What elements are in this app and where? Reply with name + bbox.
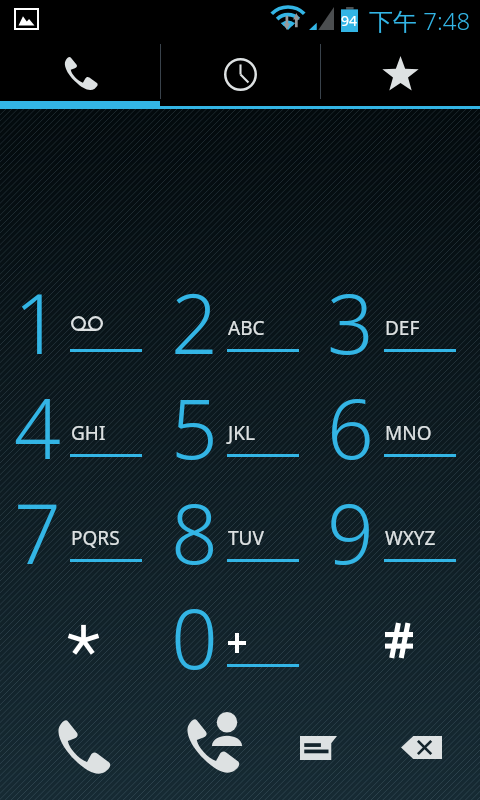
staticText: 下午 7:48 <box>369 4 471 37</box>
staticText: JKL <box>228 420 255 446</box>
button[interactable]: Call <box>0 700 160 800</box>
staticText: 9 <box>327 476 374 581</box>
staticText: 1 <box>14 266 61 371</box>
button[interactable]: Phone <box>0 38 160 101</box>
button[interactable]: 7 <box>0 494 160 599</box>
staticText: 6 <box>327 371 374 476</box>
staticText: 7 <box>14 476 61 581</box>
button[interactable]: Recent calls <box>161 38 320 101</box>
staticText: 4 <box>14 371 61 476</box>
button[interactable]: Backspace <box>385 700 480 800</box>
button[interactable]: Send message <box>305 700 385 800</box>
button[interactable]: Pound <box>320 599 480 704</box>
staticText: 8 <box>171 476 218 581</box>
staticText: MNO <box>385 420 432 446</box>
staticText: GHI <box>71 420 106 446</box>
staticText: 94 <box>341 11 358 30</box>
button[interactable]: 8 <box>160 494 320 599</box>
staticText: 5 <box>171 371 218 476</box>
button[interactable]: 3 <box>320 284 480 389</box>
button[interactable]: 9 <box>320 494 480 599</box>
staticText: ABC <box>228 315 265 341</box>
staticText: 0 <box>171 581 218 686</box>
button[interactable]: 0 <box>160 599 320 704</box>
button[interactable]: Star <box>0 599 160 704</box>
button[interactable]: 2 <box>160 284 320 389</box>
staticText: 2 <box>171 266 218 371</box>
button[interactable]: Add to contacts <box>160 700 305 800</box>
button[interactable]: 1 <box>0 284 160 389</box>
staticText: 3 <box>327 266 374 371</box>
button[interactable]: 4 <box>0 389 160 494</box>
button[interactable]: 6 <box>320 389 480 494</box>
staticText: PQRS <box>71 525 120 551</box>
staticText: WXYZ <box>385 525 436 551</box>
button[interactable]: Favorites <box>321 38 480 101</box>
button[interactable]: 5 <box>160 389 320 494</box>
staticText: DEF <box>385 315 420 341</box>
staticText: TUV <box>228 525 264 551</box>
